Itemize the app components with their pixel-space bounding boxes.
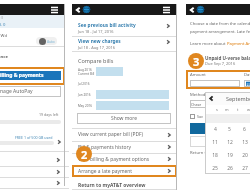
button[interactable]: 11 bbox=[208, 136, 222, 149]
button[interactable]: Open bbox=[0, 177, 64, 189]
staticText: 26 bbox=[227, 165, 233, 172]
staticText: 19 bbox=[227, 152, 233, 159]
staticText: Learn more about bbox=[190, 41, 227, 47]
staticText: Compare bills bbox=[78, 57, 114, 64]
button[interactable]: AT&T logo bbox=[83, 6, 90, 13]
staticText: ance bbox=[0, 54, 8, 60]
button[interactable]: View new charges bbox=[72, 36, 177, 51]
staticText: Return to myAT&T overview bbox=[78, 182, 146, 189]
staticText: Current Bill bbox=[78, 72, 95, 76]
button[interactable]: Open bbox=[0, 154, 64, 166]
staticText: s bbox=[216, 107, 218, 112]
button[interactable]: Bill & payments history bbox=[72, 141, 177, 153]
button[interactable]: 5 bbox=[222, 123, 237, 136]
button[interactable]: 26 bbox=[222, 162, 237, 174]
staticText: illing & payments bbox=[0, 72, 44, 79]
staticText: 2 bbox=[81, 147, 88, 162]
staticText: See previous bill activity bbox=[78, 22, 136, 29]
staticText: View current paper bill (PDF) bbox=[78, 131, 144, 138]
staticText: Jul 18 - Aug 17, 2016 bbox=[78, 45, 115, 50]
button[interactable]: 4 bbox=[208, 123, 222, 136]
button[interactable]: Open bbox=[0, 166, 64, 178]
button[interactable]: View billing & payment options bbox=[72, 153, 177, 165]
button[interactable]: Auto bbox=[36, 37, 57, 45]
staticText: 5 bbox=[228, 126, 231, 133]
staticText: Jul 2016 bbox=[78, 82, 90, 86]
staticText: 27 bbox=[242, 165, 248, 172]
staticText: t Wd bbox=[0, 33, 7, 39]
staticText: Due Sep 7, 2016 bbox=[205, 61, 236, 66]
staticText: 6 bbox=[243, 126, 246, 133]
staticText: Sav bbox=[197, 114, 203, 119]
staticText: Method bbox=[190, 92, 206, 98]
staticText: Return to bbox=[190, 150, 209, 156]
staticText: Jun 2016 bbox=[78, 93, 91, 97]
staticText: t bbox=[237, 107, 239, 112]
button[interactable]: 12 bbox=[222, 136, 237, 149]
staticText: Amount bbox=[190, 72, 206, 78]
button[interactable]: 18 bbox=[208, 149, 222, 162]
staticText: 19 days left bbox=[39, 112, 59, 117]
staticText: w bbox=[247, 107, 250, 112]
staticText: View billing & payment options bbox=[78, 156, 150, 163]
staticText: Show more bbox=[111, 115, 137, 122]
staticText: September bbox=[226, 95, 250, 102]
staticText: m bbox=[225, 107, 229, 112]
button[interactable]: Back bbox=[75, 7, 81, 13]
staticText: Chase bbox=[191, 102, 202, 107]
staticText: View new charges bbox=[78, 38, 121, 45]
staticText: May 2016 bbox=[78, 104, 93, 108]
button[interactable]: Menu bbox=[163, 6, 170, 14]
button[interactable]: 6 bbox=[237, 123, 250, 136]
button[interactable]: 13 bbox=[237, 136, 250, 149]
staticText: Arrange a late payment bbox=[78, 168, 133, 175]
button[interactable]: nage AutoPay bbox=[0, 86, 61, 97]
button[interactable]: AT&T logo bbox=[197, 6, 204, 13]
staticText: Jun 18 - Jul 17, 2016 bbox=[78, 29, 114, 34]
button[interactable]: 19 bbox=[222, 149, 237, 162]
staticText: Payment Arrangements bbox=[227, 41, 250, 47]
staticText: 3 bbox=[193, 54, 200, 69]
button[interactable]: Previous month bbox=[208, 95, 215, 102]
button[interactable]: illing & payments bbox=[0, 71, 61, 80]
staticText: nage AutoPay bbox=[0, 88, 33, 95]
button[interactable]: 20 bbox=[237, 149, 250, 162]
staticText: Bill & payments history bbox=[78, 144, 131, 151]
staticText: 25 bbox=[212, 165, 218, 172]
staticText: 13 bbox=[242, 139, 248, 146]
button[interactable]: 25 bbox=[208, 162, 222, 174]
button[interactable]: Back bbox=[189, 7, 195, 13]
button[interactable]: See previous bill activity bbox=[72, 15, 177, 35]
staticText: 11 bbox=[212, 139, 218, 146]
staticText: und. 0 bbox=[0, 22, 6, 28]
button[interactable]: Arrange a late payment bbox=[72, 165, 177, 177]
staticText: Unpaid U-verse balance bbox=[205, 55, 250, 61]
staticText: 12 bbox=[227, 139, 233, 146]
staticText: Aug 2016 bbox=[78, 68, 92, 72]
staticText: Date bbox=[244, 72, 250, 78]
staticText: 18 bbox=[212, 152, 218, 159]
staticText: 4 bbox=[214, 126, 217, 133]
staticText: FREE 1 of 500 GB used bbox=[15, 135, 53, 140]
button[interactable]: Menu bbox=[51, 6, 58, 14]
staticText: Auto bbox=[47, 39, 55, 44]
staticText: one l bbox=[0, 15, 3, 21]
staticText: Choose a date from the calendar to set u… bbox=[190, 21, 250, 27]
button[interactable]: 27 bbox=[237, 162, 250, 174]
button[interactable]: View current paper bill (PDF) bbox=[72, 128, 177, 141]
button[interactable]: Show more bbox=[77, 113, 171, 124]
staticText: payment arrangement. Late fees may apply… bbox=[190, 29, 250, 35]
staticText: 20 bbox=[242, 152, 248, 159]
